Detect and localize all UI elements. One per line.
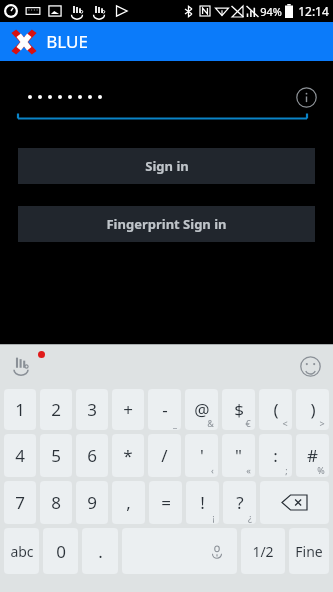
staticText: ; <box>285 464 288 476</box>
button[interactable]: ) <box>296 389 329 430</box>
button[interactable]: " <box>222 434 255 477</box>
button[interactable]: - <box>148 389 181 430</box>
button[interactable]: $ <box>222 389 255 430</box>
staticText: 9 <box>87 491 97 514</box>
staticText: % <box>317 464 325 476</box>
staticText: $ <box>234 398 244 421</box>
button[interactable]: = <box>149 481 182 524</box>
staticText: Sign in <box>145 157 189 175</box>
button[interactable]: 0 <box>43 528 78 574</box>
staticText: abc <box>10 542 34 561</box>
staticText: < <box>282 417 288 429</box>
staticText: ‹ <box>211 464 214 476</box>
staticText: @ <box>194 398 210 421</box>
button[interactable]: : <box>259 434 292 477</box>
button[interactable]: / <box>148 434 181 477</box>
button[interactable]: * <box>112 434 144 477</box>
button[interactable]: Info <box>0 73 333 121</box>
staticText: 5 <box>51 444 61 467</box>
button[interactable]: ? <box>223 481 256 524</box>
button[interactable]: Fingerprint Sign in <box>18 206 315 242</box>
button[interactable]: Backspace <box>260 481 329 524</box>
button[interactable]: abc <box>4 528 39 574</box>
staticText: 2 <box>51 398 61 421</box>
button[interactable]: @ <box>185 389 218 430</box>
staticText: ( <box>273 398 279 421</box>
staticText: " <box>235 444 242 467</box>
staticText: , <box>126 491 131 514</box>
staticText: 8 <box>51 491 61 514</box>
button[interactable]: 9 <box>76 481 108 524</box>
button[interactable]: Fine <box>289 528 329 574</box>
button[interactable]: 2 <box>40 389 72 430</box>
button[interactable]: # <box>296 434 329 477</box>
button[interactable]: + <box>112 389 144 430</box>
staticText: & <box>207 417 214 429</box>
button[interactable]: 6 <box>76 434 108 477</box>
button[interactable]: Emoji <box>295 351 325 381</box>
staticText: + <box>123 398 133 421</box>
staticText: 0 <box>56 540 66 563</box>
staticText: * <box>123 444 133 467</box>
staticText: Fine <box>295 542 323 561</box>
staticText: ¿ <box>248 511 252 523</box>
button[interactable]: 3 <box>76 389 108 430</box>
staticText: # <box>307 444 318 467</box>
button[interactable]: Sign in <box>18 148 315 184</box>
staticText: Fingerprint Sign in <box>106 215 227 233</box>
staticText: = <box>161 491 171 514</box>
staticText: _ <box>173 417 177 429</box>
button[interactable]: , <box>112 481 145 524</box>
button[interactable]: ! <box>186 481 219 524</box>
button[interactable]: ( <box>259 389 292 430</box>
staticText: 94% <box>260 4 282 19</box>
staticText: 7 <box>15 491 25 514</box>
button[interactable]: 1/2 <box>241 528 285 574</box>
staticText: ! <box>200 491 205 514</box>
staticText: € <box>245 417 251 429</box>
staticText: 3 <box>87 398 97 421</box>
staticText: 1 <box>15 398 25 421</box>
button[interactable]: 4 <box>4 434 36 477</box>
staticText: . <box>98 540 103 563</box>
button[interactable]: 7 <box>4 481 36 524</box>
button[interactable]: Info <box>293 84 319 110</box>
staticText: « <box>246 464 251 476</box>
button[interactable]: Space <box>122 528 237 574</box>
button[interactable]: ' <box>185 434 218 477</box>
staticText: 12:14 <box>298 3 329 19</box>
staticText: ? <box>236 491 244 514</box>
staticText: ' <box>200 444 204 467</box>
staticText: ) <box>310 398 316 421</box>
button[interactable]: . <box>82 528 118 574</box>
staticText: 1/2 <box>252 542 274 561</box>
staticText: ¡ <box>212 511 215 523</box>
button[interactable]: 1 <box>4 389 36 430</box>
staticText: / <box>161 444 168 467</box>
button[interactable]: 8 <box>40 481 72 524</box>
staticText: : <box>273 444 278 467</box>
staticText: 6 <box>87 444 97 467</box>
staticText: > <box>319 417 325 429</box>
staticText: BLUE <box>46 30 88 53</box>
staticText: 4 <box>15 444 25 467</box>
staticText: - <box>162 398 168 421</box>
button[interactable]: 5 <box>40 434 72 477</box>
button[interactable]: Gestures <box>6 351 36 381</box>
